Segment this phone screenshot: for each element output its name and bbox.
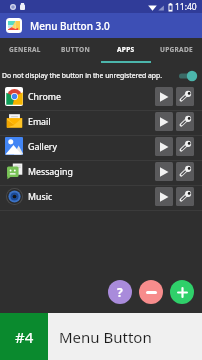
button[interactable]: APPS: [100, 38, 151, 60]
button[interactable]: App icon: [6, 18, 22, 33]
staticText: Gallery: [28, 141, 155, 153]
staticText: Do not display the button in the unregis…: [2, 71, 179, 80]
staticText: 11:40: [175, 1, 197, 13]
staticText: Messaging: [28, 166, 155, 178]
staticText: Menu Button 3.0: [30, 19, 110, 33]
button[interactable]: Email: [0, 111, 202, 132]
button[interactable]: Settings for Music: [176, 187, 194, 206]
staticText: APPS: [117, 45, 135, 54]
staticText: Music: [28, 191, 155, 203]
button[interactable]: Chrome: [0, 86, 202, 107]
button[interactable]: Rank 4: [0, 313, 48, 360]
button[interactable]: Music: [0, 186, 202, 207]
button[interactable]: Remove: [139, 280, 163, 304]
button[interactable]: Settings for Messaging: [176, 162, 194, 181]
button[interactable]: Launch Gallery: [155, 137, 173, 156]
staticText: Email: [28, 116, 155, 128]
staticText: ?: [117, 284, 123, 300]
button[interactable]: Settings for Gallery: [176, 137, 194, 156]
staticText: Menu Button: [59, 327, 152, 347]
staticText: #4: [15, 327, 34, 347]
button[interactable]: Settings for Chrome: [176, 87, 194, 106]
button[interactable]: Help: [108, 280, 132, 304]
button[interactable]: BUTTON: [50, 38, 100, 60]
button[interactable]: Menu Button: [48, 313, 202, 360]
button[interactable]: Add: [170, 280, 194, 304]
button[interactable]: Launch Music: [155, 187, 173, 206]
button[interactable]: GENERAL: [0, 38, 50, 60]
button[interactable]: Launch Email: [155, 112, 173, 131]
button[interactable]: Launch Chrome: [155, 87, 173, 106]
staticText: GENERAL: [9, 45, 41, 54]
button[interactable]: Messaging: [0, 161, 202, 182]
button[interactable]: Do not display the button in the unregis…: [0, 65, 202, 86]
button[interactable]: Launch Messaging: [155, 162, 173, 181]
button[interactable]: UPGRADE: [151, 38, 202, 60]
staticText: Chrome: [28, 91, 155, 103]
button[interactable]: Gallery: [0, 136, 202, 157]
button[interactable]: Settings for Email: [176, 112, 194, 131]
staticText: UPGRADE: [160, 45, 193, 54]
staticText: BUTTON: [61, 45, 90, 54]
